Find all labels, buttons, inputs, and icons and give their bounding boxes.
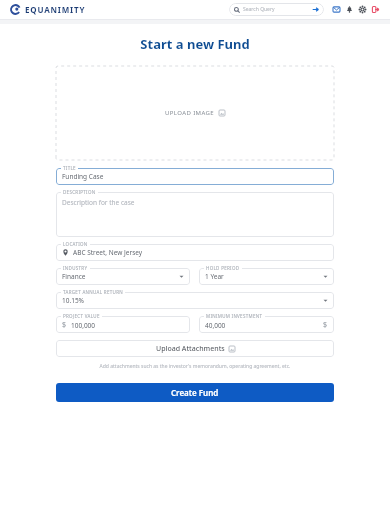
- button[interactable]: Notifications: [343, 3, 356, 16]
- staticText: LOCATION: [63, 241, 88, 247]
- staticText: $: [323, 320, 328, 330]
- button[interactable]: Settings: [356, 3, 369, 16]
- button[interactable]: Description for the case: [56, 192, 334, 237]
- staticText: TITLE: [63, 165, 76, 171]
- staticText: INDUSTRY: [63, 265, 88, 271]
- button[interactable]: 10.15%: [56, 292, 334, 309]
- staticText: Funding Case: [62, 172, 104, 181]
- button[interactable]: $: [56, 316, 190, 333]
- staticText: DESCRIPTION: [63, 189, 96, 195]
- staticText: Search Query: [243, 6, 275, 13]
- staticText: 100,000: [71, 321, 96, 330]
- button[interactable]: EQUANIMITY: [10, 4, 86, 15]
- staticText: 1 Year: [205, 272, 224, 281]
- button[interactable]: ABC Street, New Jersey: [56, 244, 334, 261]
- staticText: Upload Attachments: [156, 344, 225, 354]
- button[interactable]: Create Fund: [56, 383, 334, 402]
- staticText: EQUANIMITY: [25, 4, 86, 15]
- button[interactable]: Funding Case: [56, 168, 334, 185]
- button[interactable]: Upload image: [56, 66, 334, 160]
- button[interactable]: Finance: [56, 268, 190, 285]
- staticText: TARGET ANNUAL RETURN: [63, 289, 123, 295]
- staticText: Create Fund: [171, 387, 219, 398]
- staticText: HOLD PERIOD: [206, 265, 240, 271]
- button[interactable]: Search Query: [229, 3, 324, 16]
- staticText: PROJECT VALUE: [63, 313, 100, 319]
- staticText: Add attachments such as the investor's m…: [56, 363, 334, 370]
- staticText: 40,000: [205, 321, 226, 330]
- button[interactable]: 1 Year: [199, 268, 334, 285]
- staticText: ABC Street, New Jersey: [73, 248, 143, 257]
- button[interactable]: 40,000: [199, 316, 334, 333]
- staticText: Finance: [62, 272, 86, 281]
- staticText: $: [62, 320, 67, 330]
- staticText: 10.15%: [62, 296, 85, 305]
- button[interactable]: Messages: [330, 3, 343, 16]
- button[interactable]: Log out: [369, 3, 382, 16]
- staticText: Description for the case: [62, 198, 135, 207]
- staticText: MINIMUM INVESTMENT: [206, 313, 263, 319]
- button[interactable]: Upload Attachments: [56, 340, 334, 357]
- staticText: Start a new Fund: [0, 35, 390, 53]
- staticText: UPLOAD IMAGE: [165, 109, 215, 117]
